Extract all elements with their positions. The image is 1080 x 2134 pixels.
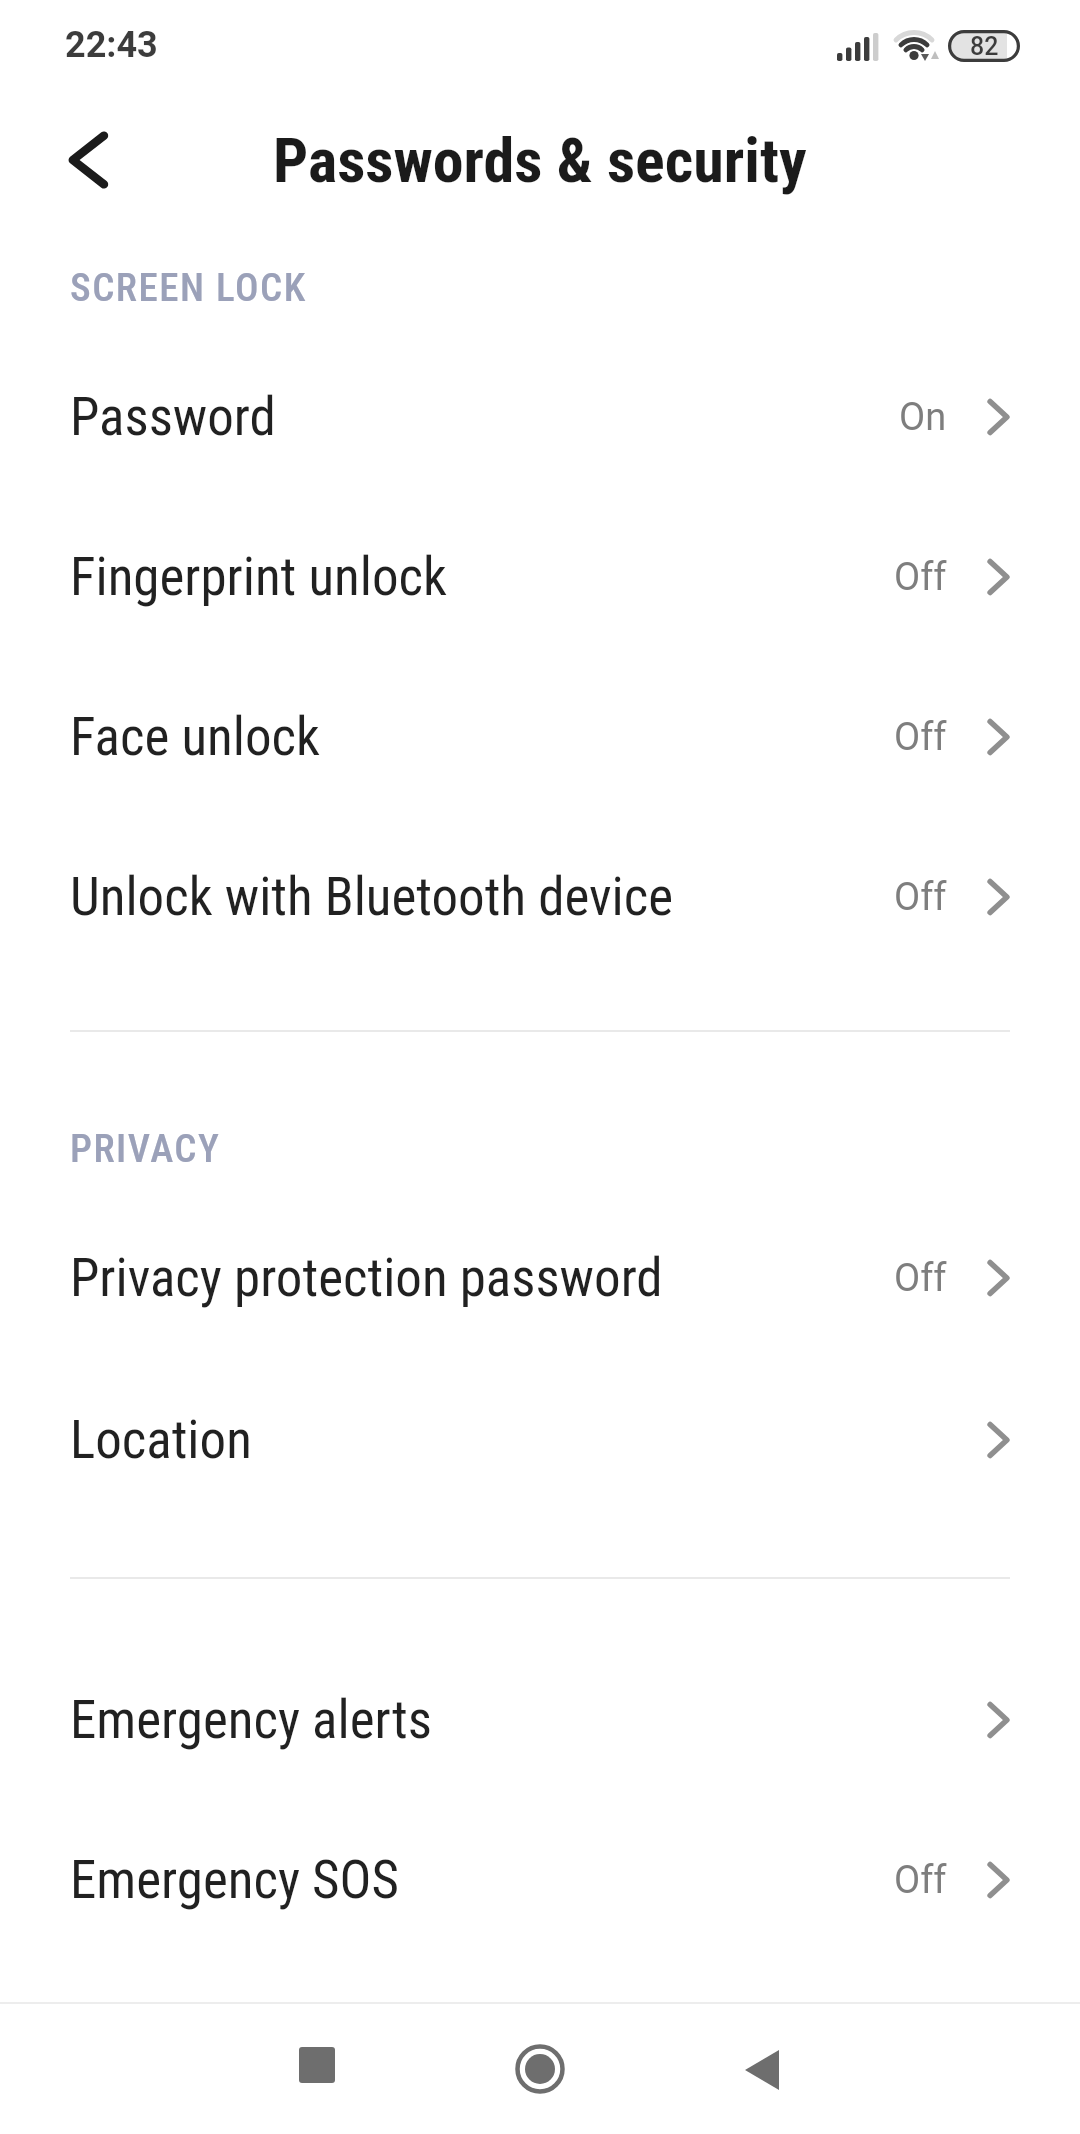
- staticText: Emergency SOS: [70, 1849, 399, 1911]
- staticText: Fingerprint unlock: [70, 546, 447, 608]
- staticText: Off: [894, 555, 947, 600]
- staticText: Password: [70, 386, 276, 448]
- staticText: Off: [894, 1256, 947, 1301]
- staticText: PRIVACY: [70, 1126, 221, 1170]
- staticText: Location: [70, 1409, 252, 1471]
- button[interactable]: Password: [0, 337, 1080, 497]
- staticText: Face unlock: [70, 706, 320, 768]
- button[interactable]: Emergency alerts: [0, 1640, 1080, 1800]
- staticText: On: [899, 395, 947, 440]
- staticText: SCREEN LOCK: [70, 265, 307, 309]
- staticText: 82: [970, 32, 999, 61]
- staticText: Privacy protection password: [70, 1247, 663, 1309]
- staticText: Off: [894, 715, 947, 760]
- button[interactable]: Emergency SOS: [0, 1800, 1080, 1960]
- staticText: Passwords & security: [273, 124, 807, 197]
- button[interactable]: [52, 120, 124, 200]
- button[interactable]: [726, 2034, 798, 2106]
- button[interactable]: [504, 2033, 576, 2105]
- button[interactable]: Privacy protection password: [0, 1198, 1080, 1358]
- button[interactable]: Face unlock: [0, 657, 1080, 817]
- button[interactable]: Unlock with Bluetooth device: [0, 817, 1080, 977]
- staticText: Emergency alerts: [70, 1689, 432, 1751]
- staticText: Off: [894, 875, 947, 920]
- staticText: 22:43: [65, 24, 158, 66]
- button[interactable]: Location: [0, 1360, 1080, 1520]
- button[interactable]: [281, 2029, 353, 2101]
- staticText: Unlock with Bluetooth device: [70, 866, 674, 928]
- staticText: Off: [894, 1858, 947, 1903]
- button[interactable]: Fingerprint unlock: [0, 497, 1080, 657]
